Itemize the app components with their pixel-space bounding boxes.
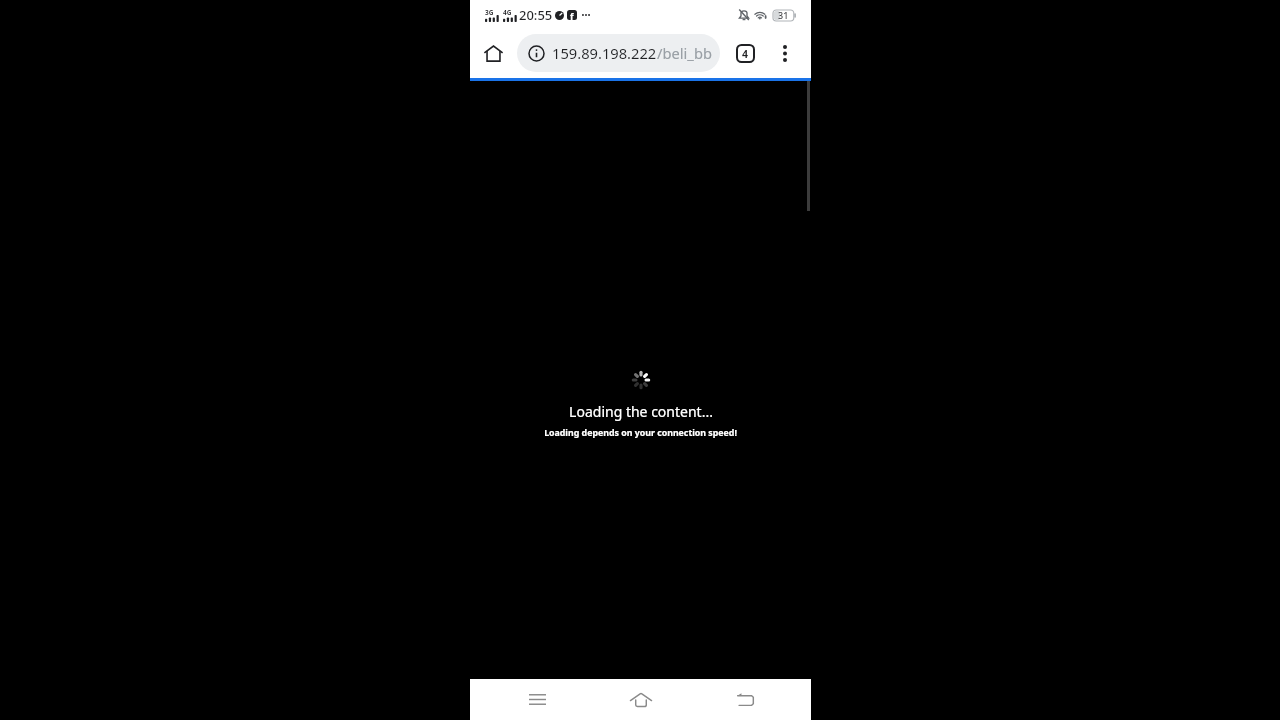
- button[interactable]: More options: [771, 30, 799, 76]
- staticText: 20:55: [519, 6, 553, 24]
- staticText: Loading the content...: [569, 402, 713, 421]
- staticText: /beli_bb: [657, 43, 712, 63]
- staticText: Loading depends on your connection speed…: [544, 427, 737, 439]
- staticText: 3G: [485, 8, 494, 17]
- staticText: 4G: [503, 8, 512, 17]
- staticText: 159.89.198.222: [552, 43, 657, 63]
- button[interactable]: Home: [618, 679, 664, 720]
- button[interactable]: Tabs: [720, 30, 771, 76]
- staticText: 4: [742, 47, 749, 61]
- button[interactable]: 159.89.198.222: [517, 34, 720, 72]
- button[interactable]: Back: [722, 679, 768, 720]
- staticText: 31: [778, 9, 789, 21]
- button[interactable]: Recent apps: [514, 679, 560, 720]
- button[interactable]: Home: [470, 30, 517, 76]
- staticText: f: [570, 10, 574, 20]
